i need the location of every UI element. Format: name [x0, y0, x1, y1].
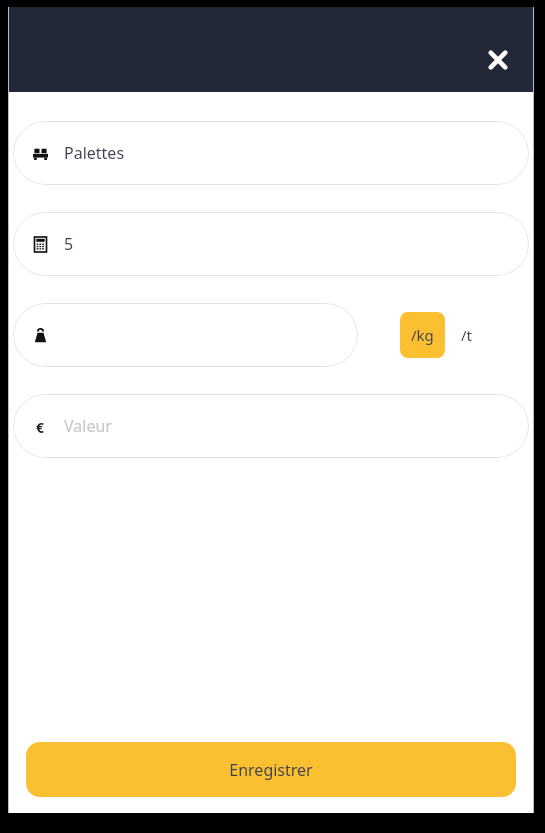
button[interactable]: Fermer	[478, 40, 518, 80]
button[interactable]: €	[13, 394, 529, 458]
button[interactable]	[13, 303, 358, 367]
button[interactable]: Enregistrer	[26, 742, 516, 797]
staticText: Enregistrer	[229, 759, 313, 781]
staticText: Valeur	[64, 415, 112, 437]
button[interactable]: /kg	[400, 312, 445, 358]
staticText: Palettes	[64, 142, 125, 164]
staticText: /t	[461, 325, 472, 345]
button[interactable]: 5	[13, 212, 529, 276]
staticText: 5	[64, 233, 74, 255]
button[interactable]: Palettes	[13, 121, 529, 185]
staticText: €	[36, 418, 45, 435]
button[interactable]: /t	[445, 312, 487, 358]
staticText: /kg	[411, 325, 434, 345]
